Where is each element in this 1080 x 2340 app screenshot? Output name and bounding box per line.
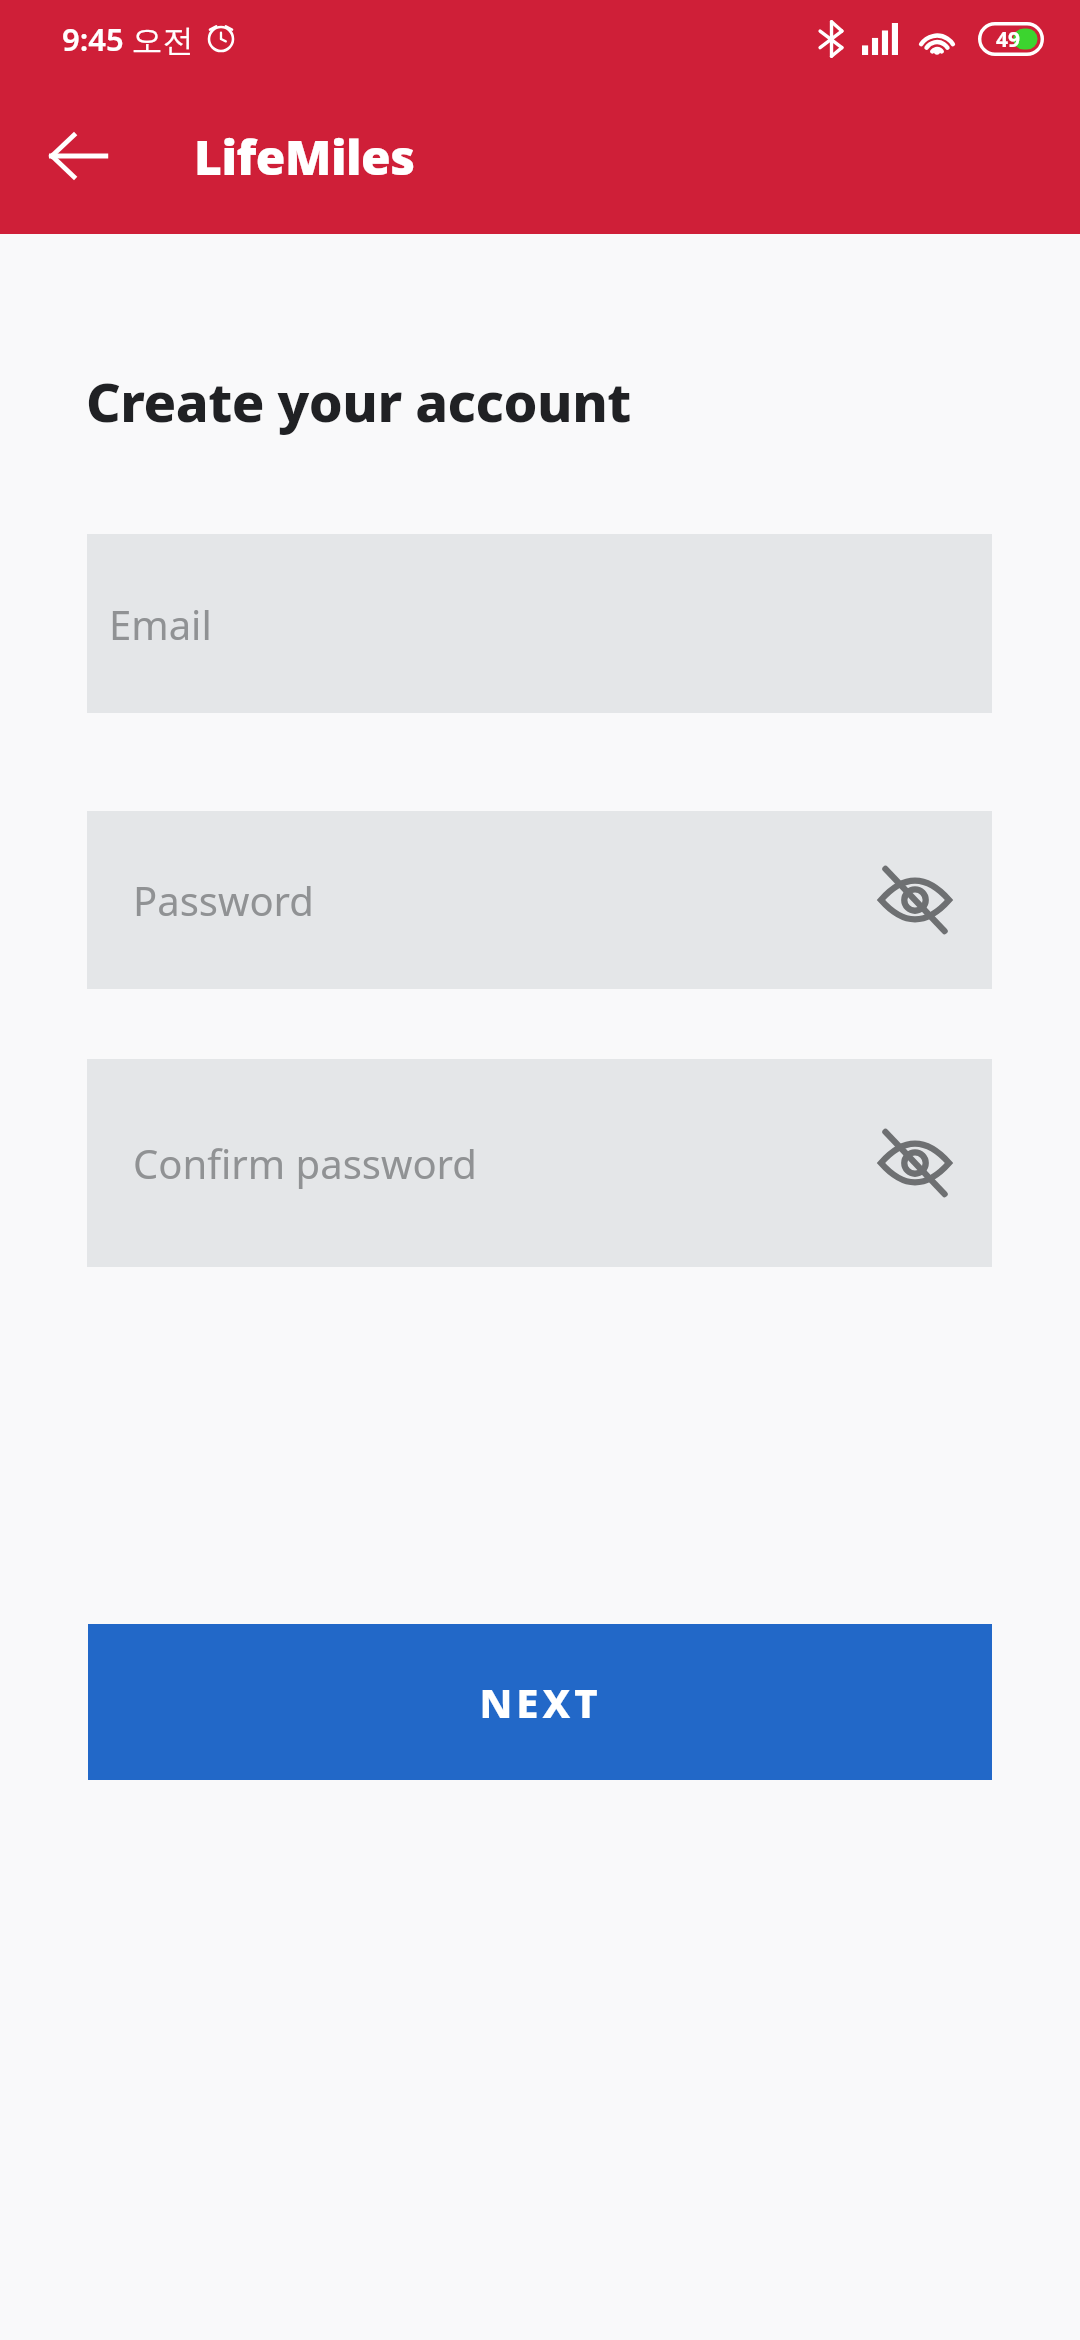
button[interactable]: Back [30,108,126,204]
button[interactable]: Email [87,534,992,713]
staticText: Email [109,597,212,651]
staticText: Create your account [86,364,631,438]
staticText: 9:45 오전 [62,18,194,60]
button[interactable]: Show password [860,845,970,955]
button[interactable]: Password [87,811,992,989]
button[interactable]: NEXT [88,1624,992,1780]
staticText: 49 [996,25,1021,54]
staticText: Confirm password [133,1136,477,1190]
staticText: NEXT [479,1675,602,1729]
staticText: Password [133,873,314,927]
staticText: LifeMiles [194,124,415,189]
button[interactable]: Show password [860,1108,970,1218]
button[interactable]: Confirm password [87,1059,992,1267]
